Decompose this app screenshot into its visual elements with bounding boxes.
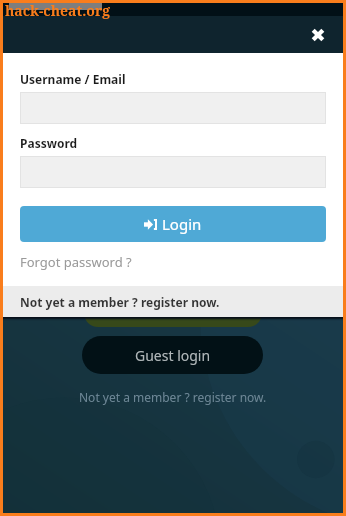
staticText: Guest login xyxy=(135,346,211,365)
button[interactable]: Not yet a member ? register now. xyxy=(3,286,343,317)
staticText: hack-cheat.org xyxy=(5,1,111,20)
staticText: Password xyxy=(20,135,78,151)
staticText: Login xyxy=(162,214,202,234)
staticText: Not yet a member ? register now. xyxy=(20,294,220,310)
button[interactable]: Login xyxy=(20,206,326,242)
staticText: Not yet a member ? register now. xyxy=(79,389,267,405)
button[interactable]: Close xyxy=(305,22,331,48)
button[interactable]: Forgot password ? xyxy=(20,253,132,271)
staticText: Username / Email xyxy=(20,71,126,87)
button[interactable]: Guest login xyxy=(82,336,263,374)
button[interactable] xyxy=(20,92,326,124)
button[interactable] xyxy=(84,288,262,327)
staticText: Forgot password ? xyxy=(20,253,132,271)
button[interactable] xyxy=(20,156,326,188)
